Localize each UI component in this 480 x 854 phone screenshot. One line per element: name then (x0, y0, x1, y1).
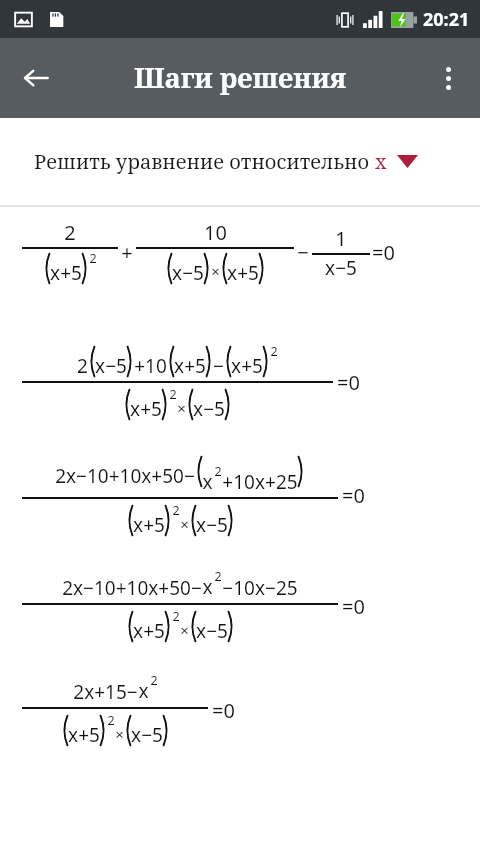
staticText: 2 (150, 672, 158, 689)
staticText: 2 (77, 353, 88, 379)
staticText: x+5 (227, 260, 259, 286)
staticText: × (115, 724, 124, 744)
staticText: 2 (214, 463, 222, 480)
staticText: x+5 (130, 396, 162, 422)
staticText: +10x+25 (222, 469, 298, 495)
staticText: x+5 (231, 353, 263, 379)
staticText: x−5 (196, 512, 228, 538)
staticText: + (121, 239, 133, 266)
staticText: 2 (214, 568, 222, 585)
staticText: 1 (335, 225, 347, 252)
staticText: 2 (89, 250, 97, 267)
button[interactable]: Back (12, 54, 60, 102)
staticText: 20:21 (423, 7, 470, 32)
staticText: × (177, 398, 186, 418)
staticText: × (211, 261, 220, 281)
staticText: x−5 (196, 618, 228, 644)
staticText: x+5 (174, 353, 206, 379)
staticText: 10 (204, 219, 227, 246)
staticText: 2x−10+10x+50− (55, 463, 195, 489)
staticText: x (202, 574, 213, 600)
button[interactable]: Решить уравнение относительно (0, 118, 480, 205)
staticText: x (202, 469, 213, 495)
staticText: 2 (64, 219, 76, 246)
staticText: x (138, 678, 149, 704)
staticText: x+5 (133, 618, 165, 644)
staticText: 2x−10+10x+50− (62, 575, 202, 601)
staticText: × (180, 514, 189, 534)
staticText: 2x+15− (73, 679, 138, 705)
staticText: x−5 (193, 396, 225, 422)
staticText: 2 (169, 386, 177, 403)
staticText: x+5 (133, 512, 165, 538)
staticText: × (180, 620, 189, 640)
staticText: =0 (342, 482, 365, 509)
staticText: x+5 (50, 260, 82, 286)
staticText: Шаги решения (134, 59, 347, 96)
staticText: Решить уравнение относительно (34, 148, 375, 175)
staticText: 2 (107, 712, 115, 729)
staticText: x−5 (172, 260, 204, 286)
button[interactable]: More options (424, 54, 472, 102)
staticText: x (375, 148, 387, 175)
staticText: 2 (270, 343, 278, 360)
staticText: − (213, 353, 224, 379)
staticText: +10 (134, 353, 167, 379)
staticText: −10x−25 (222, 575, 298, 601)
staticText: x−5 (131, 722, 163, 748)
staticText: =0 (342, 593, 365, 620)
staticText: − (297, 239, 309, 266)
staticText: x−5 (325, 255, 357, 281)
staticText: x−5 (95, 353, 127, 379)
staticText: =0 (337, 369, 360, 396)
staticText: 2 (172, 502, 180, 519)
staticText: x+5 (68, 722, 100, 748)
staticText: =0 (372, 239, 395, 266)
staticText: 2 (172, 608, 180, 625)
staticText: =0 (212, 697, 235, 724)
